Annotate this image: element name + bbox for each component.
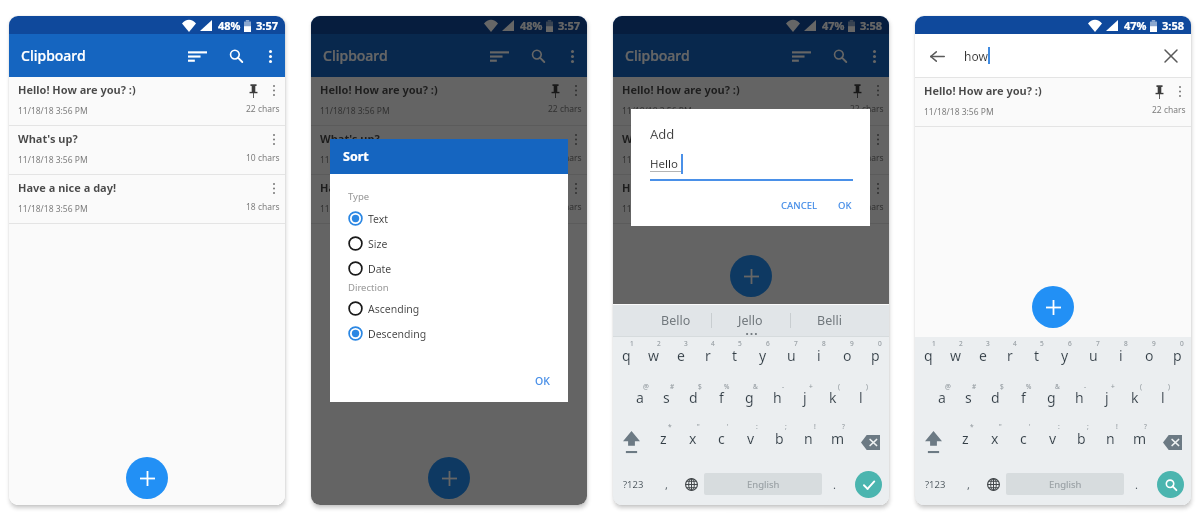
button[interactable]: 0 <box>861 337 889 379</box>
button[interactable]: ( <box>1121 379 1149 421</box>
button[interactable]: Item options <box>265 179 283 197</box>
button[interactable]: + <box>1093 379 1121 421</box>
button[interactable]: ; <box>1067 421 1096 463</box>
button[interactable]: More options <box>260 46 280 66</box>
button[interactable]: @ <box>626 379 653 421</box>
button[interactable]: Have a nice a day! <box>9 175 285 224</box>
button[interactable]: Item options <box>265 81 283 99</box>
button[interactable]: Clear <box>1160 45 1182 67</box>
button[interactable]: Item options <box>869 81 887 99</box>
button[interactable]: Hello! How are you? :) <box>311 77 587 126</box>
button[interactable]: 6 <box>1051 337 1079 379</box>
button[interactable]: 1 <box>915 337 942 379</box>
button[interactable]: ? <box>1125 421 1154 463</box>
button[interactable]: Search <box>223 43 249 69</box>
button[interactable]: " <box>980 421 1009 463</box>
button[interactable]: 2 <box>942 337 969 379</box>
button[interactable]: ( <box>819 379 847 421</box>
button[interactable]: Back <box>926 45 948 67</box>
button[interactable]: . <box>1124 463 1149 505</box>
button[interactable]: ) <box>847 379 875 421</box>
button[interactable]: Add <box>730 255 772 297</box>
button[interactable]: More options <box>562 46 582 66</box>
button[interactable]: Shift <box>613 421 649 463</box>
button[interactable]: - <box>1065 379 1093 421</box>
button[interactable]: 1 <box>613 337 640 379</box>
button[interactable]: % <box>1009 379 1037 421</box>
button[interactable]: 8 <box>805 337 833 379</box>
button[interactable]: ! <box>1096 421 1125 463</box>
button[interactable]: . <box>822 463 847 505</box>
button[interactable]: Jello <box>711 305 790 336</box>
button[interactable]: Item options <box>567 81 585 99</box>
button[interactable]: Date <box>330 256 568 281</box>
button[interactable]: What's up? <box>613 126 889 175</box>
button[interactable]: Backspace <box>852 421 889 463</box>
button[interactable]: ?123 <box>613 463 653 505</box>
button[interactable]: Search <box>525 43 551 69</box>
button[interactable]: ! <box>794 421 823 463</box>
button[interactable]: Have a nice a day! <box>311 175 587 224</box>
button[interactable]: Item options <box>869 179 887 197</box>
button[interactable]: Shift <box>915 421 951 463</box>
button[interactable]: * <box>649 421 678 463</box>
button[interactable]: & <box>735 379 763 421</box>
button[interactable]: Change language <box>981 463 1006 505</box>
button[interactable]: ? <box>823 421 852 463</box>
button[interactable]: More options <box>864 46 884 66</box>
button[interactable]: 5 <box>1023 337 1051 379</box>
button[interactable]: Add <box>1032 286 1074 328</box>
button[interactable]: English <box>704 473 822 495</box>
button[interactable]: 6 <box>749 337 777 379</box>
button[interactable]: , <box>653 463 679 505</box>
button[interactable]: & <box>1037 379 1065 421</box>
button[interactable]: " <box>678 421 707 463</box>
button[interactable]: Item options <box>567 130 585 148</box>
button[interactable]: : <box>1038 421 1067 463</box>
button[interactable]: Item options <box>265 130 283 148</box>
button[interactable]: ; <box>765 421 794 463</box>
button[interactable]: Have a nice a day! <box>613 175 889 224</box>
button[interactable]: Search <box>1157 471 1184 498</box>
button[interactable]: Text <box>330 206 568 231</box>
button[interactable]: CANCEL <box>775 194 824 217</box>
button[interactable]: Item options <box>567 179 585 197</box>
button[interactable]: $ <box>982 379 1009 421</box>
button[interactable]: Bello <box>613 305 711 336</box>
button[interactable]: Sort <box>788 43 814 69</box>
button[interactable]: Item options <box>1171 82 1189 100</box>
button[interactable]: ?123 <box>915 463 955 505</box>
button[interactable]: Add <box>428 457 470 499</box>
button[interactable]: Hello! How are you? :) <box>613 77 889 126</box>
button[interactable]: 0 <box>1163 337 1191 379</box>
button[interactable]: 4 <box>694 337 721 379</box>
button[interactable]: ' <box>707 421 736 463</box>
button[interactable]: # <box>955 379 982 421</box>
button[interactable]: OK <box>832 194 858 217</box>
button[interactable]: What's up? <box>9 126 285 175</box>
button[interactable]: OK <box>529 368 556 394</box>
button[interactable]: Hello! How are you? :) <box>9 77 285 126</box>
button[interactable]: - <box>763 379 791 421</box>
button[interactable]: 3 <box>667 337 694 379</box>
button[interactable]: Hello! How are you? :) <box>915 78 1191 127</box>
button[interactable]: $ <box>680 379 707 421</box>
button[interactable]: 9 <box>833 337 861 379</box>
button[interactable]: 7 <box>1079 337 1107 379</box>
button[interactable]: Descending <box>330 321 568 346</box>
button[interactable]: Sort <box>486 43 512 69</box>
button[interactable]: : <box>736 421 765 463</box>
button[interactable]: Change language <box>679 463 704 505</box>
button[interactable]: Ascending <box>330 296 568 321</box>
button[interactable]: ) <box>1149 379 1177 421</box>
button[interactable]: Done <box>855 471 882 498</box>
button[interactable]: Search <box>827 43 853 69</box>
button[interactable]: Add <box>126 457 168 499</box>
button[interactable]: + <box>791 379 819 421</box>
button[interactable]: * <box>951 421 980 463</box>
button[interactable]: Backspace <box>1154 421 1191 463</box>
button[interactable]: 8 <box>1107 337 1135 379</box>
button[interactable]: 2 <box>640 337 667 379</box>
button[interactable]: Sort <box>184 43 210 69</box>
button[interactable]: , <box>955 463 981 505</box>
